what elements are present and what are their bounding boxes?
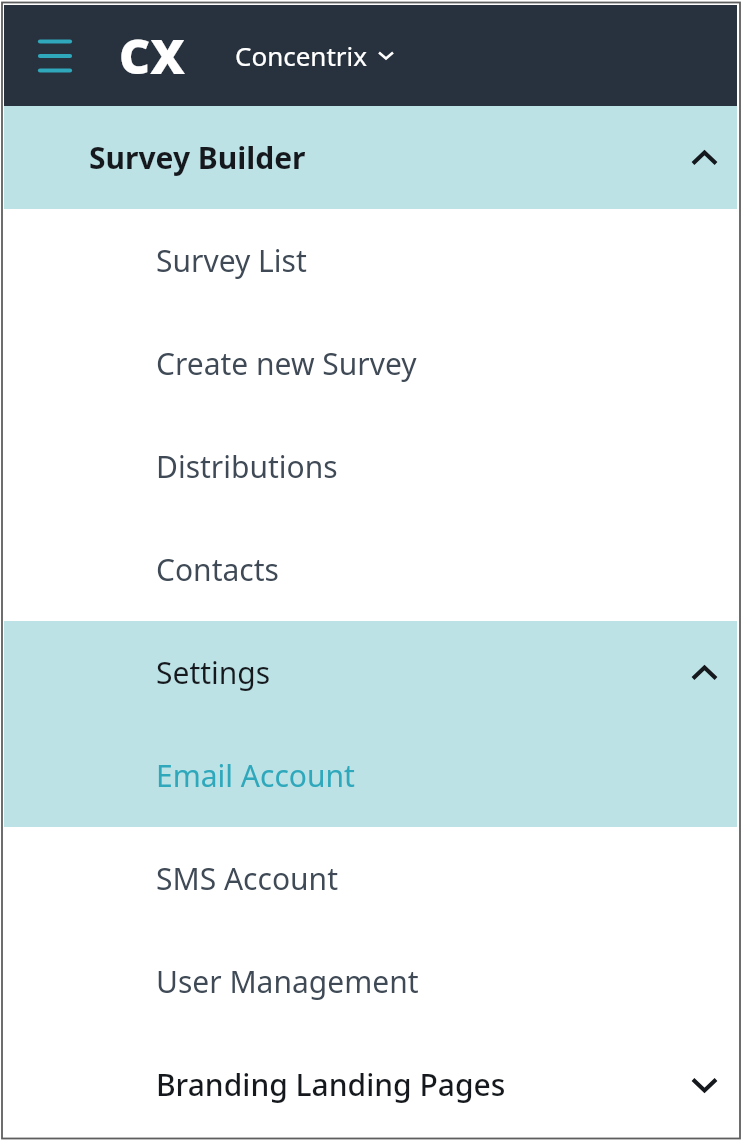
staticText: Settings [156, 652, 271, 693]
button[interactable]: Create new Survey [4, 312, 737, 415]
staticText: SMS Account [156, 858, 338, 899]
staticText: Create new Survey [156, 343, 417, 384]
button[interactable]: SMS Account [4, 827, 737, 930]
staticText: Email Account [156, 755, 355, 796]
button[interactable]: Survey List [4, 209, 737, 312]
button[interactable]: Contacts [4, 518, 737, 621]
button[interactable]: Distributions [4, 415, 737, 518]
staticText: Branding Landing Pages [156, 1064, 506, 1105]
staticText: Contacts [156, 549, 279, 590]
button[interactable]: User Management [4, 930, 737, 1033]
button[interactable] [38, 38, 72, 74]
staticText: Survey Builder [89, 137, 306, 178]
staticText: Distributions [156, 446, 338, 487]
staticText: Concentrix [235, 38, 368, 73]
staticText: CX [119, 23, 185, 88]
button[interactable]: Settings [4, 621, 737, 724]
staticText: User Management [156, 961, 419, 1002]
button[interactable]: Branding Landing Pages [4, 1033, 737, 1136]
button[interactable]: Email Account [4, 724, 737, 827]
button[interactable]: Concentrix [235, 38, 394, 73]
staticText: Survey List [156, 240, 307, 281]
button[interactable]: Survey Builder [4, 106, 737, 209]
